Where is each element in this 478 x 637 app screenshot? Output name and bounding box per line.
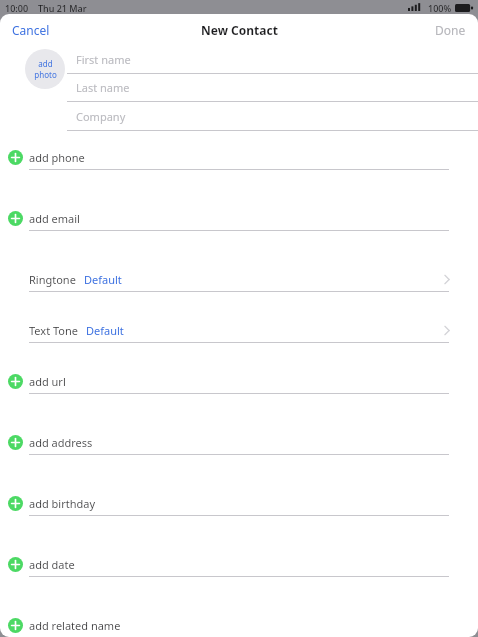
staticText: add	[38, 58, 53, 69]
button[interactable]: Done	[423, 16, 478, 44]
staticText: First name	[76, 52, 131, 67]
staticText: Cancel	[12, 22, 50, 38]
button[interactable]: add related name	[0, 617, 478, 637]
staticText: add date	[29, 557, 75, 572]
button[interactable]: Cancel	[0, 16, 62, 44]
staticText: Company	[76, 109, 126, 124]
staticText: 10:00	[5, 2, 29, 14]
staticText: add address	[29, 435, 93, 450]
button[interactable]: Ringtone	[0, 271, 478, 292]
staticText: Done	[435, 22, 466, 38]
staticText: 100%	[428, 2, 452, 14]
staticText: add url	[29, 374, 66, 389]
button[interactable]: Add photo	[25, 49, 65, 89]
staticText: add related name	[29, 618, 121, 633]
staticText: Thu 21 Mar	[38, 2, 87, 14]
staticText: Default	[86, 323, 124, 338]
staticText: New Contact	[201, 22, 278, 38]
staticText: add email	[29, 211, 80, 226]
staticText: Ringtone	[29, 272, 76, 287]
staticText: add birthday	[29, 496, 96, 511]
button[interactable]: add address	[0, 434, 478, 455]
button[interactable]: add date	[0, 556, 478, 577]
staticText: Last name	[76, 80, 130, 95]
button[interactable]: add birthday	[0, 495, 478, 516]
button[interactable]: add phone	[0, 149, 478, 170]
button[interactable]: Company	[67, 102, 478, 131]
staticText: Default	[84, 272, 122, 287]
button[interactable]: add email	[0, 210, 478, 231]
button[interactable]: add url	[0, 373, 478, 394]
button[interactable]: Last name	[67, 74, 478, 102]
staticText: Text Tone	[29, 323, 78, 338]
button[interactable]: First name	[67, 45, 478, 74]
button[interactable]: Text Tone	[0, 322, 478, 343]
staticText: add phone	[29, 150, 85, 165]
staticText: photo	[34, 69, 57, 80]
